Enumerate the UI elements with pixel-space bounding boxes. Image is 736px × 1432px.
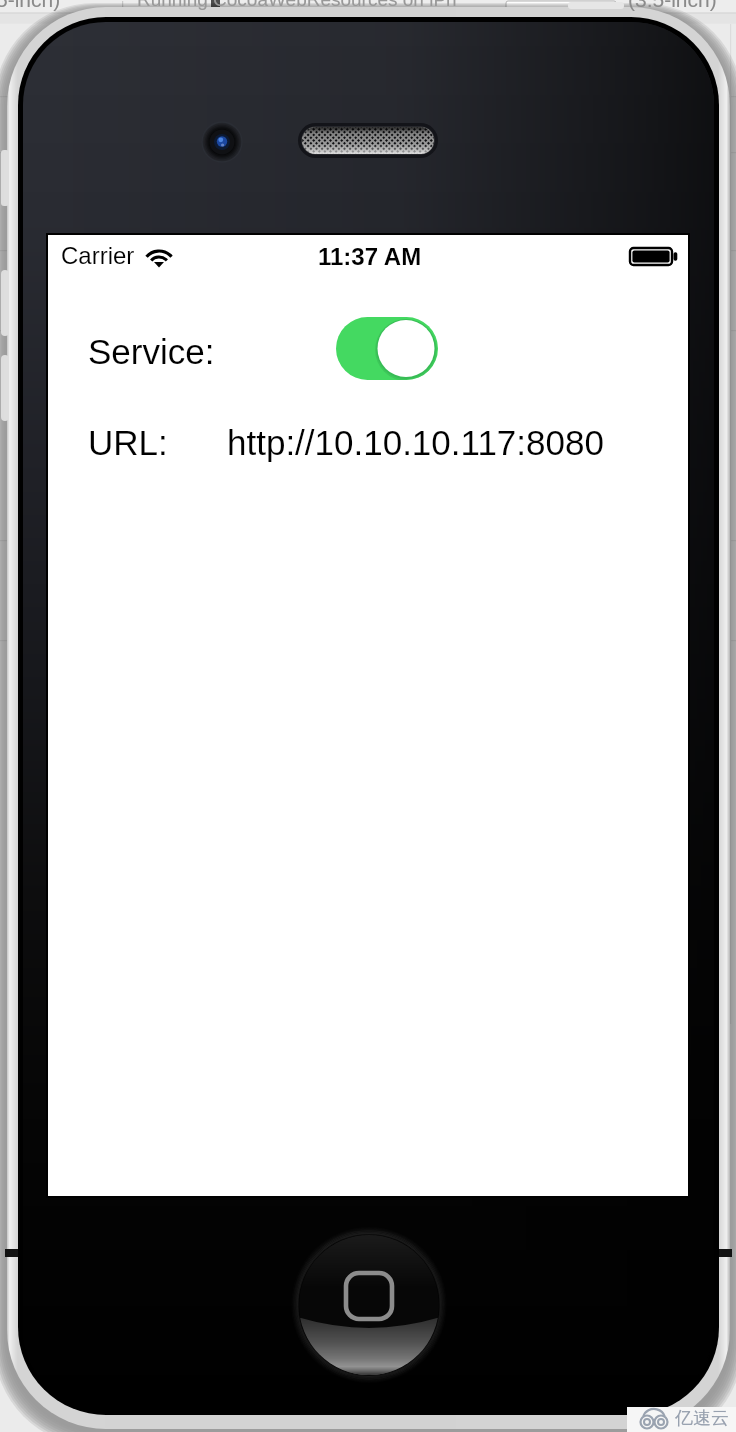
staticText: Carrier: [61, 242, 135, 269]
staticText: http://10.10.10.117:8080: [227, 423, 604, 462]
staticText: Service:: [88, 332, 215, 371]
staticText: 亿速云: [675, 1407, 729, 1430]
staticText: 5-inch): [0, 0, 61, 11]
staticText: URL:: [88, 423, 168, 462]
staticText: Running CocoaWebResources on iPh: [137, 0, 457, 10]
button[interactable]: Service toggle: [336, 317, 438, 380]
staticText: (3.5-inch): [628, 0, 717, 11]
staticText: 11:37 AM: [318, 243, 422, 270]
